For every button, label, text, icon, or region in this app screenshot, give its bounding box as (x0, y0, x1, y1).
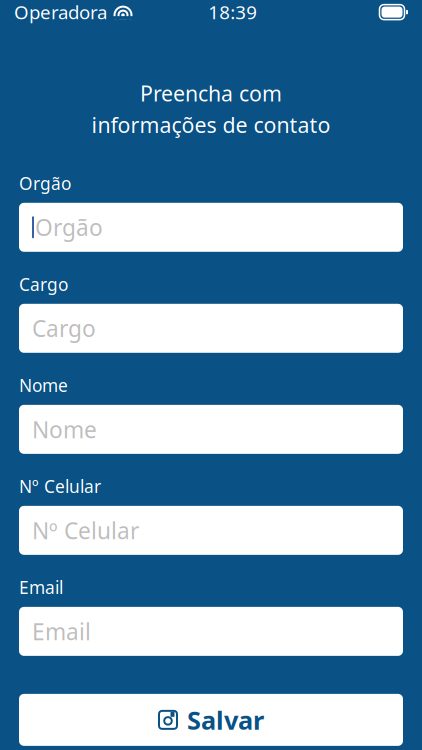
staticText: Email (19, 576, 63, 599)
button[interactable]: Cargo (19, 304, 403, 353)
button[interactable]: Nº Celular (19, 506, 403, 555)
staticText: Orgão (35, 212, 103, 242)
button[interactable]: Orgão (19, 203, 403, 252)
staticText: 18:39 (208, 0, 257, 24)
staticText: Nome (32, 414, 97, 444)
button[interactable]: Salvar (19, 694, 403, 746)
staticText: Email (32, 616, 91, 646)
button[interactable]: Nome (19, 405, 403, 454)
staticText: Orgão (19, 172, 71, 195)
staticText: Preencha com (140, 79, 282, 107)
staticText: Cargo (32, 313, 96, 343)
staticText: informações de contato (91, 110, 330, 139)
staticText: Nº Celular (32, 515, 139, 545)
button[interactable]: Email (19, 607, 403, 656)
staticText: Nome (19, 374, 68, 397)
staticText: Cargo (19, 273, 68, 296)
staticText: Nº Celular (19, 475, 101, 498)
staticText: Operadora (14, 0, 107, 24)
staticText: Salvar (187, 703, 264, 737)
